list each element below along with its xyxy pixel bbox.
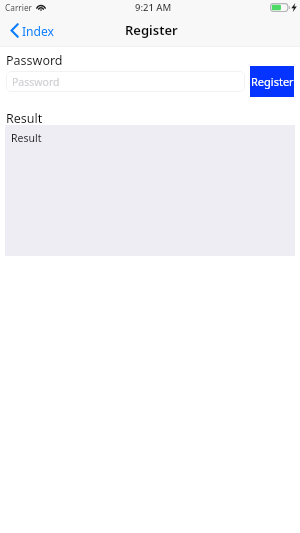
staticText: Carrier bbox=[5, 2, 32, 13]
staticText: Password bbox=[6, 52, 63, 69]
staticText: Result bbox=[6, 110, 43, 127]
staticText: Register bbox=[251, 74, 294, 89]
staticText: 9:21 AM bbox=[135, 1, 172, 14]
staticText: Register bbox=[125, 21, 178, 39]
staticText: Index bbox=[22, 23, 54, 39]
button[interactable]: Password input field bbox=[6, 71, 245, 92]
button[interactable]: Back to Index bbox=[4, 18, 56, 42]
staticText: Result bbox=[11, 131, 42, 145]
button[interactable]: Register bbox=[250, 66, 294, 97]
staticText: Password bbox=[12, 75, 60, 89]
